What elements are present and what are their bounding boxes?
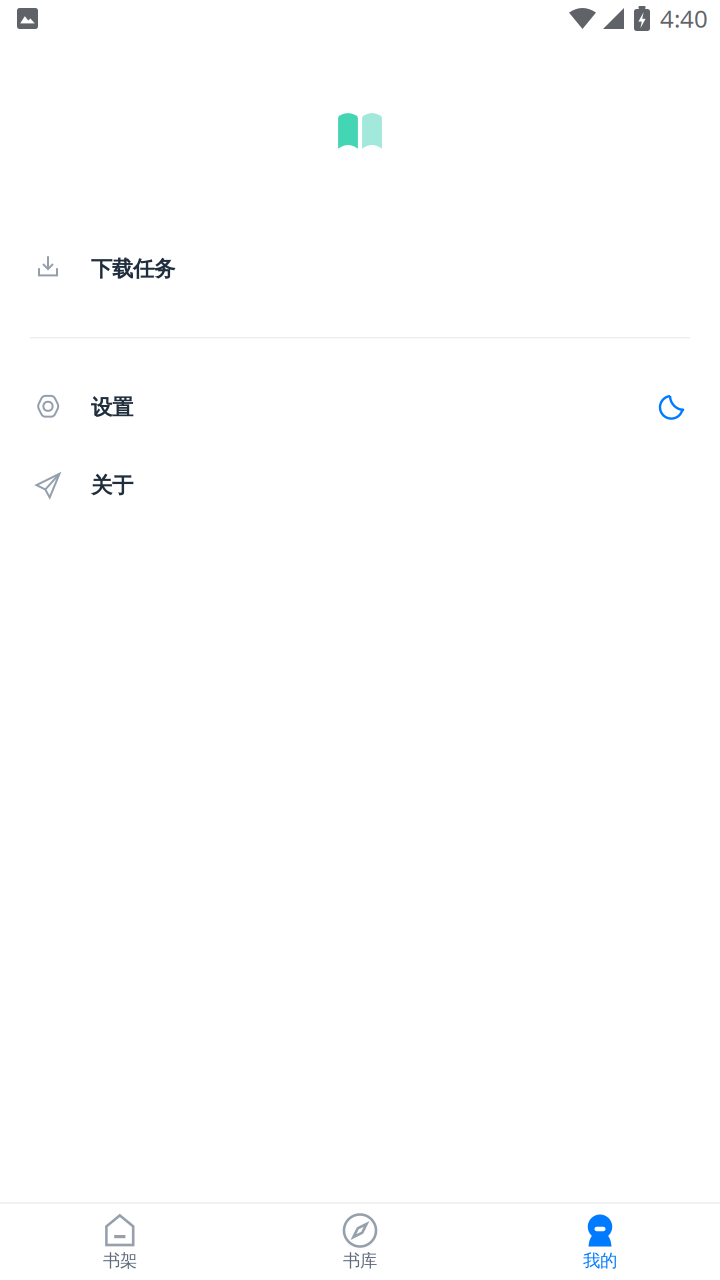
staticText: 关于 [91, 472, 133, 499]
staticText: 下载任务 [91, 256, 175, 282]
staticText: 我的 [583, 1250, 617, 1271]
button[interactable]: Bookshelf [0, 1204, 240, 1280]
staticText: 书架 [103, 1250, 137, 1271]
button[interactable]: 关于 [0, 446, 720, 524]
button[interactable]: 下载任务 [0, 230, 720, 308]
button[interactable]: Profile [480, 1204, 720, 1280]
button[interactable]: 设置 [0, 368, 720, 446]
staticText: 书库 [343, 1250, 377, 1271]
staticText: 设置 [91, 394, 133, 421]
button[interactable]: Library [240, 1204, 480, 1280]
staticText: 4:40 [660, 3, 708, 34]
